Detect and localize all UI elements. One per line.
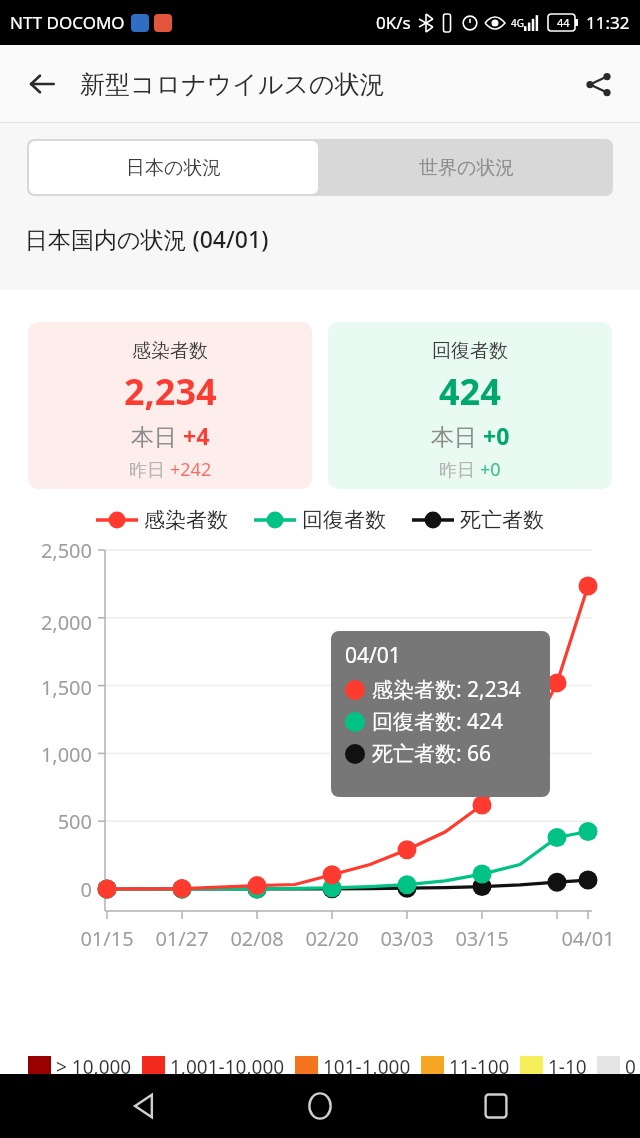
staticText: 回復者数 bbox=[432, 339, 508, 363]
staticText: 回復者数: 424 bbox=[372, 707, 504, 736]
staticText: 2,000 bbox=[0, 609, 92, 636]
staticText: 424 bbox=[439, 367, 501, 416]
staticText: 1,000 bbox=[0, 741, 92, 768]
staticText: 感染者数 bbox=[144, 507, 228, 533]
staticText: 1-10 bbox=[548, 1054, 587, 1074]
staticText: 死亡者数 bbox=[460, 507, 544, 533]
staticText: 03/03 bbox=[367, 925, 447, 952]
staticText: 03/15 bbox=[442, 925, 522, 952]
staticText: 01/27 bbox=[142, 925, 222, 952]
staticText: 11:32 bbox=[586, 11, 630, 34]
staticText: 4G bbox=[511, 16, 524, 30]
staticText: 回復者数 bbox=[302, 507, 386, 533]
staticText: 昨日 bbox=[129, 457, 170, 482]
staticText: 本日 bbox=[431, 420, 483, 451]
button[interactable]: 日本の状況 bbox=[29, 141, 318, 194]
staticText: 04/01 bbox=[345, 641, 401, 670]
button[interactable]: Back bbox=[18, 60, 66, 108]
button[interactable]: Recent apps bbox=[464, 1074, 528, 1138]
staticText: > 10,000 bbox=[56, 1054, 132, 1074]
staticText: 0 bbox=[625, 1054, 636, 1074]
button[interactable]: 感染者数 bbox=[28, 322, 312, 489]
staticText: 04/01 bbox=[548, 925, 628, 952]
staticText: 2,234 bbox=[124, 367, 217, 416]
staticText: 新型コロナウイルスの状況 bbox=[80, 69, 385, 100]
staticText: +242 bbox=[170, 457, 212, 482]
staticText: 01/15 bbox=[67, 925, 147, 952]
staticText: 感染者数: 2,234 bbox=[372, 675, 521, 704]
staticText: 日本国内の状況 (04/01) bbox=[25, 223, 269, 254]
staticText: +0 bbox=[480, 457, 501, 482]
staticText: 1,500 bbox=[0, 674, 92, 701]
staticText: 世界の状況 bbox=[419, 156, 515, 180]
staticText: 感染者数 bbox=[132, 339, 208, 363]
staticText: 死亡者数: 66 bbox=[372, 739, 492, 768]
staticText: 日本の状況 bbox=[126, 156, 222, 180]
staticText: 11-100 bbox=[449, 1054, 510, 1074]
staticText: 0 bbox=[0, 876, 92, 903]
button[interactable]: 回復者数 bbox=[328, 322, 612, 489]
staticText: NTT DOCOMO bbox=[10, 11, 125, 34]
staticText: +4 bbox=[183, 420, 210, 451]
button[interactable]: Home bbox=[288, 1074, 352, 1138]
button[interactable]: 世界の状況 bbox=[320, 139, 613, 196]
staticText: 101-1,000 bbox=[323, 1054, 411, 1074]
button[interactable]: Share bbox=[574, 60, 622, 108]
button[interactable]: Back bbox=[112, 1074, 176, 1138]
staticText: +0 bbox=[483, 420, 510, 451]
staticText: 本日 bbox=[131, 420, 183, 451]
staticText: 02/20 bbox=[292, 925, 372, 952]
staticText: 0K/s bbox=[376, 11, 411, 34]
staticText: 昨日 bbox=[439, 457, 480, 482]
staticText: 1,001-10,000 bbox=[170, 1054, 285, 1074]
staticText: 500 bbox=[0, 808, 92, 835]
staticText: 44 bbox=[557, 15, 570, 30]
staticText: 02/08 bbox=[217, 925, 297, 952]
staticText: 2,500 bbox=[0, 537, 92, 564]
